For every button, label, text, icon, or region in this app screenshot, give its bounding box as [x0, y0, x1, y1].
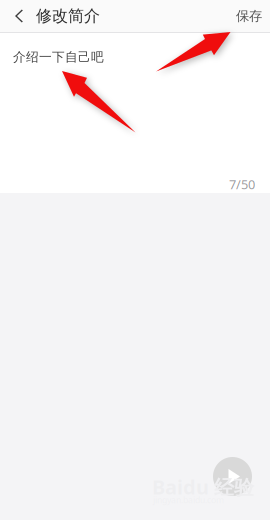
button[interactable]: 保存	[228, 0, 270, 32]
staticText: 保存	[236, 8, 262, 24]
staticText: 修改简介	[36, 6, 100, 26]
staticText: 介绍一下自己吧	[13, 49, 104, 65]
staticText: Baidu 经验	[152, 473, 254, 500]
staticText: 7/50	[229, 176, 255, 193]
button[interactable]: Back	[0, 0, 36, 32]
